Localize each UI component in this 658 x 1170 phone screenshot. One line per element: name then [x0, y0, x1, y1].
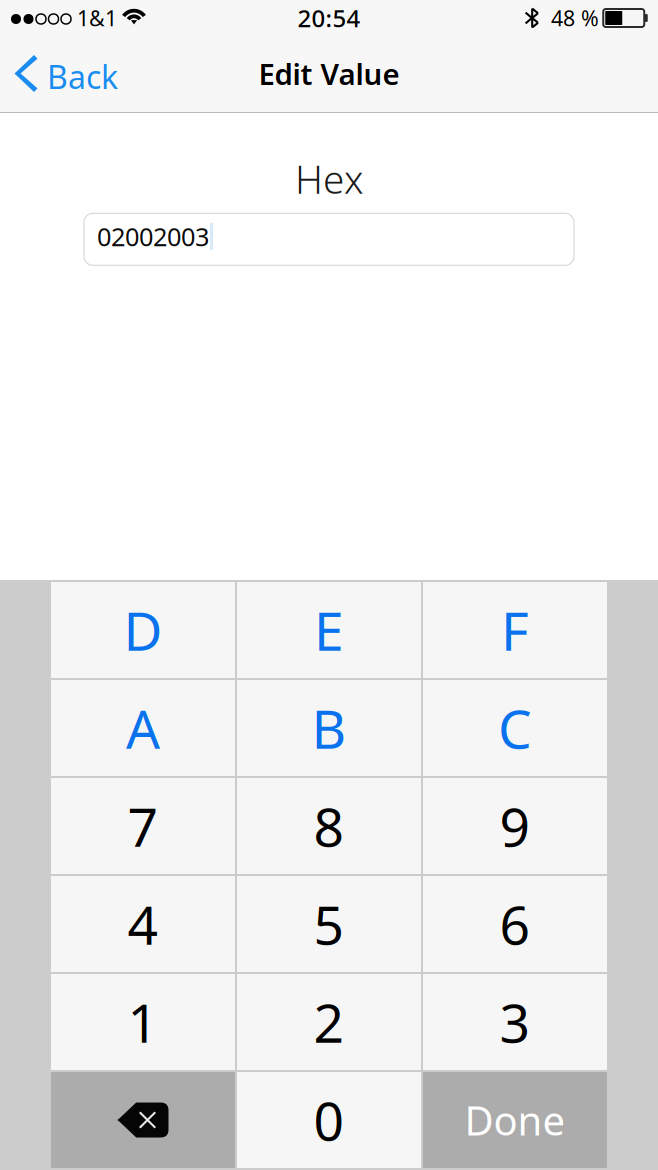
button[interactable]: 6: [423, 876, 607, 972]
staticText: Back: [47, 55, 118, 98]
staticText: 9: [499, 791, 530, 861]
staticText: D: [123, 595, 162, 665]
staticText: Hex: [295, 153, 363, 204]
staticText: Done: [464, 1093, 565, 1146]
button[interactable]: Done: [423, 1072, 607, 1168]
staticText: 8: [313, 791, 344, 861]
staticText: 2: [313, 987, 344, 1057]
staticText: 6: [499, 889, 530, 959]
staticText: 1: [127, 987, 158, 1057]
staticText: 20:54: [297, 2, 360, 34]
staticText: 7: [127, 791, 158, 861]
staticText: F: [501, 595, 529, 665]
button[interactable]: D: [51, 582, 235, 678]
button[interactable]: 1: [51, 974, 235, 1070]
staticText: 3: [499, 987, 530, 1057]
button[interactable]: 5: [237, 876, 421, 972]
button[interactable]: Delete: [51, 1072, 235, 1168]
button[interactable]: C: [423, 680, 607, 776]
button[interactable]: F: [423, 582, 607, 678]
staticText: B: [311, 693, 346, 763]
staticText: A: [126, 693, 160, 763]
button[interactable]: E: [237, 582, 421, 678]
staticText: 48 %: [551, 4, 599, 32]
button[interactable]: 0: [237, 1072, 421, 1168]
button[interactable]: 3: [423, 974, 607, 1070]
button[interactable]: Back: [0, 46, 130, 107]
staticText: 0: [313, 1085, 344, 1155]
staticText: 02002003: [97, 219, 209, 253]
staticText: 5: [313, 889, 344, 959]
button[interactable]: B: [237, 680, 421, 776]
button[interactable]: 4: [51, 876, 235, 972]
button[interactable]: 2: [237, 974, 421, 1070]
staticText: Edit Value: [258, 54, 399, 93]
staticText: 1&1: [77, 4, 117, 32]
button[interactable]: 9: [423, 778, 607, 874]
staticText: C: [498, 693, 532, 763]
button[interactable]: A: [51, 680, 235, 776]
button[interactable]: 7: [51, 778, 235, 874]
staticText: E: [314, 595, 344, 665]
staticText: 4: [127, 889, 158, 959]
button[interactable]: 8: [237, 778, 421, 874]
